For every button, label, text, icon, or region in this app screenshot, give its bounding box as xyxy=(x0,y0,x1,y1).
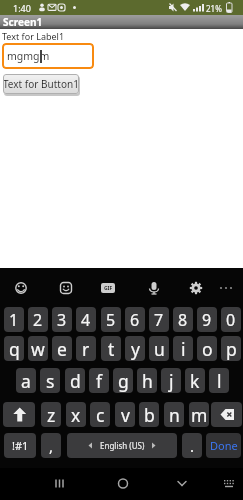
staticText: o xyxy=(202,337,213,361)
staticText: 2 xyxy=(33,309,43,331)
staticText: d xyxy=(70,369,81,393)
button[interactable]: GIF xyxy=(101,283,115,293)
button[interactable] xyxy=(47,471,72,496)
button[interactable]: b xyxy=(139,402,159,427)
button[interactable] xyxy=(56,278,76,298)
button[interactable]: 1 xyxy=(4,307,24,332)
button[interactable] xyxy=(186,278,206,298)
button[interactable]: . xyxy=(182,433,202,458)
button[interactable]: i xyxy=(173,336,193,361)
button[interactable]: 6 xyxy=(125,307,145,332)
button[interactable]: 4 xyxy=(76,307,96,332)
button[interactable]: g xyxy=(113,368,133,393)
button[interactable]: 2 xyxy=(28,307,48,332)
button[interactable]: h xyxy=(137,368,157,393)
staticText: p xyxy=(226,337,237,361)
staticText: Text for Button1 xyxy=(3,77,79,91)
button[interactable]: 7 xyxy=(149,307,169,332)
button[interactable] xyxy=(11,278,31,298)
button[interactable]: d xyxy=(65,368,85,393)
staticText: Done xyxy=(210,438,238,453)
button[interactable]: , xyxy=(41,433,61,458)
staticText: 5 xyxy=(106,309,116,331)
staticText: m xyxy=(191,403,208,427)
staticText: 7 xyxy=(154,309,164,331)
button[interactable]: e xyxy=(52,336,72,361)
staticText: h xyxy=(142,369,153,393)
staticText: c xyxy=(96,403,105,427)
staticText: 1 xyxy=(9,309,19,331)
button[interactable]: n xyxy=(164,402,184,427)
button[interactable]: r xyxy=(76,336,96,361)
button[interactable] xyxy=(110,471,135,496)
button[interactable]: q xyxy=(4,336,24,361)
staticText: j xyxy=(169,369,174,393)
button[interactable]: 3 xyxy=(52,307,72,332)
staticText: v xyxy=(121,403,130,427)
staticText: 0 xyxy=(226,309,236,331)
button[interactable]: c xyxy=(90,402,110,427)
staticText: GIF xyxy=(104,285,113,292)
button[interactable]: k xyxy=(185,368,205,393)
staticText: u xyxy=(154,337,165,361)
staticText: q xyxy=(9,337,20,361)
staticText: l xyxy=(217,369,222,393)
staticText: w xyxy=(31,337,45,361)
button[interactable] xyxy=(144,278,164,298)
staticText: 4 xyxy=(81,309,91,331)
button[interactable]: m xyxy=(189,402,209,427)
button[interactable] xyxy=(169,471,194,496)
button[interactable]: a xyxy=(16,368,36,393)
staticText: g xyxy=(118,369,129,393)
staticText: n xyxy=(169,403,180,427)
button[interactable]: 0 xyxy=(221,307,241,332)
button[interactable]: y xyxy=(125,336,145,361)
staticText: 6 xyxy=(130,309,140,331)
button[interactable]: 8 xyxy=(173,307,193,332)
button[interactable]: v xyxy=(115,402,135,427)
staticText: z xyxy=(47,403,56,427)
staticText: s xyxy=(46,369,55,393)
button[interactable]: !#1 xyxy=(4,433,36,458)
staticText: 21% xyxy=(206,3,222,14)
button[interactable]: Text for Button1 xyxy=(3,74,79,94)
button[interactable] xyxy=(216,471,241,496)
staticText: 1:40 xyxy=(13,2,31,14)
button[interactable]: z xyxy=(41,402,61,427)
staticText: x xyxy=(71,403,81,427)
button[interactable]: f xyxy=(89,368,109,393)
button[interactable] xyxy=(211,402,242,427)
button[interactable]: 9 xyxy=(197,307,217,332)
button[interactable]: x xyxy=(66,402,86,427)
staticText: t xyxy=(108,337,115,361)
button[interactable]: s xyxy=(40,368,60,393)
staticText: f xyxy=(96,369,103,393)
staticText: English (US) xyxy=(100,440,145,451)
button[interactable]: mgmgm xyxy=(2,43,94,69)
staticText: y xyxy=(131,337,140,361)
button[interactable]: u xyxy=(149,336,169,361)
staticText: , xyxy=(49,436,54,456)
button[interactable]: j xyxy=(161,368,181,393)
button[interactable]: t xyxy=(101,336,121,361)
staticText: 9 xyxy=(202,309,212,331)
staticText: . xyxy=(190,436,195,456)
staticText: k xyxy=(190,369,200,393)
button[interactable]: Done xyxy=(206,433,241,458)
staticText: a xyxy=(21,369,31,393)
staticText: Text for Label1 xyxy=(2,30,65,42)
button[interactable]: o xyxy=(197,336,217,361)
button[interactable]: English (US) xyxy=(67,433,177,458)
staticText: r xyxy=(82,337,90,361)
button[interactable] xyxy=(216,278,236,298)
staticText: mgmgm xyxy=(7,49,50,63)
staticText: 8 xyxy=(178,309,188,331)
button[interactable] xyxy=(3,402,35,427)
staticText: !#1 xyxy=(12,438,29,453)
button[interactable]: w xyxy=(28,336,48,361)
button[interactable]: 5 xyxy=(101,307,121,332)
staticText: i xyxy=(181,337,186,361)
button[interactable]: l xyxy=(209,368,229,393)
staticText: Screen1 xyxy=(3,15,43,29)
button[interactable]: p xyxy=(221,336,241,361)
